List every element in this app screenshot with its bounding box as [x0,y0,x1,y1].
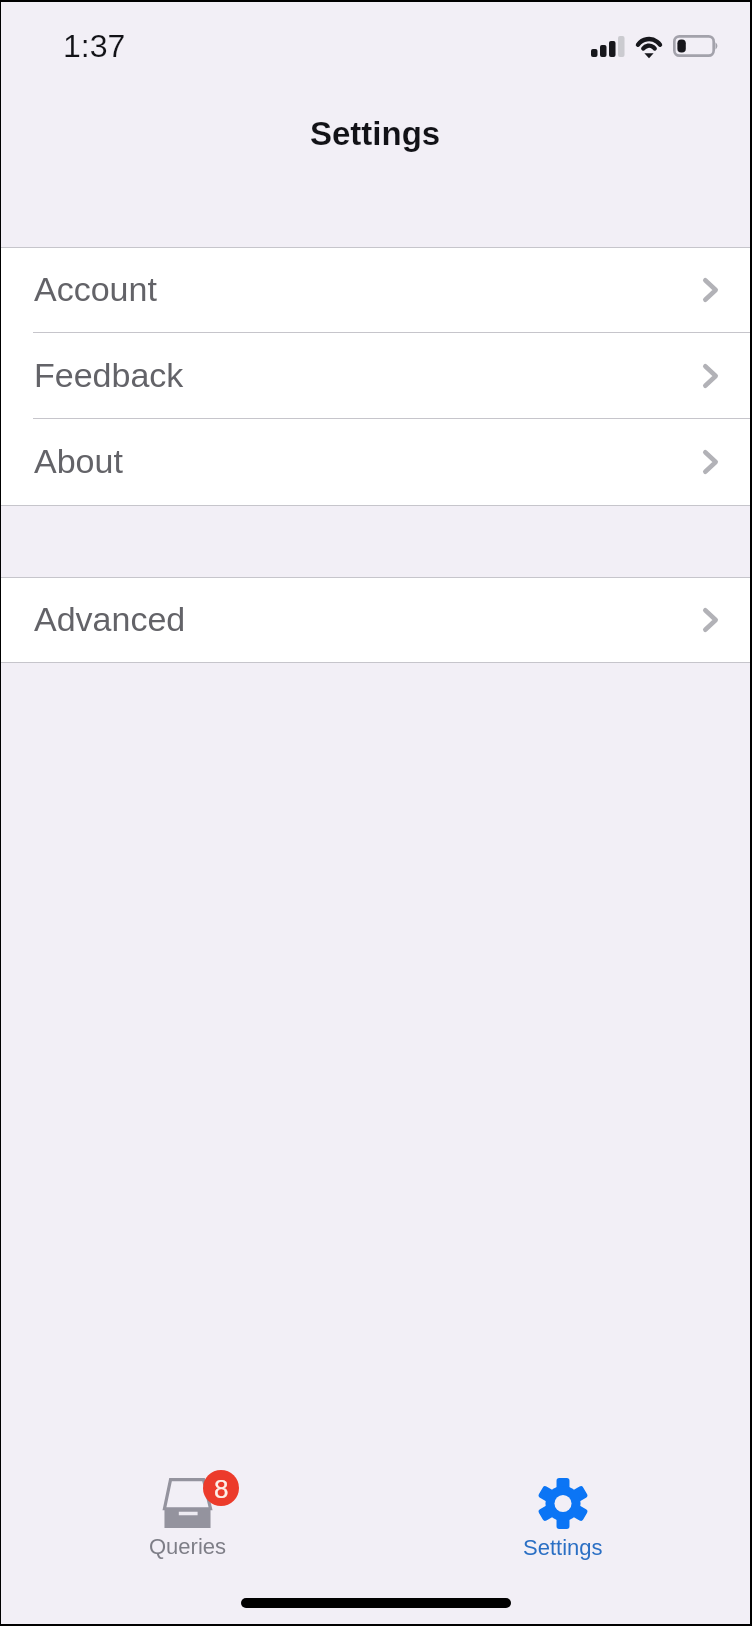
staticText: Queries [149,1534,227,1559]
staticText: Settings [523,1535,603,1560]
button[interactable]: Settings [375,1432,750,1578]
button[interactable]: Advanced [1,578,750,662]
button[interactable]: Feedback [1,333,750,419]
staticText: Advanced [34,600,186,638]
staticText: Settings [310,115,441,152]
staticText: Account [34,270,157,308]
button[interactable]: 8 [1,1432,375,1578]
other: Settings [539,1478,587,1529]
button[interactable]: Account [1,248,750,333]
staticText: 1:37 [63,28,126,64]
staticText: 8 [214,1474,229,1503]
staticText: Feedback [34,356,184,394]
button[interactable]: About [1,419,750,505]
staticText: About [34,442,123,480]
